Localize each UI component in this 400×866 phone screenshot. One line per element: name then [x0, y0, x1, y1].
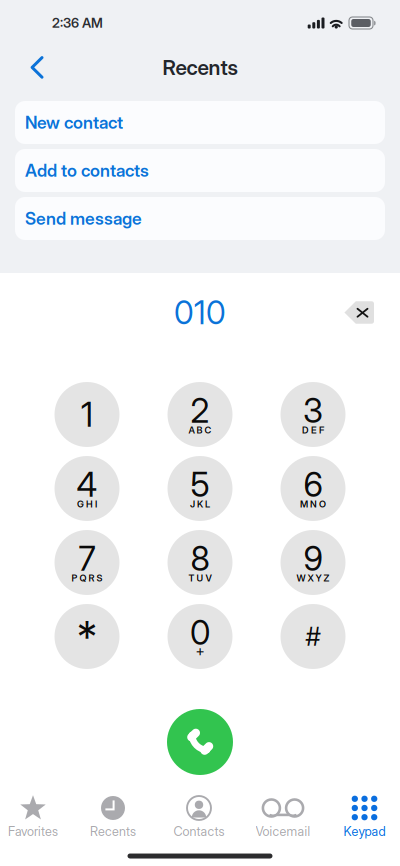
button[interactable]: Favorites — [0, 775, 80, 866]
button[interactable]: 2 — [167, 382, 232, 447]
button[interactable]: 1 — [54, 382, 119, 447]
button[interactable]: 9 — [280, 530, 345, 595]
staticText: Recents — [90, 824, 136, 839]
button[interactable]: Recents — [80, 775, 160, 866]
button[interactable]: Keypad — [320, 775, 400, 866]
staticText: 3 — [303, 390, 323, 431]
button[interactable]: Call — [167, 709, 233, 775]
staticText: New contact — [25, 112, 123, 133]
button[interactable]: Send message — [15, 197, 385, 240]
staticText: + — [195, 642, 204, 660]
staticText: 010 — [174, 293, 226, 332]
button[interactable]: 8 — [167, 530, 232, 595]
button[interactable]: * — [54, 604, 119, 669]
button[interactable]: 6 — [280, 456, 345, 521]
staticText: # — [305, 621, 320, 652]
button[interactable]: Add to contacts — [15, 149, 385, 192]
staticText: 9 — [303, 538, 322, 579]
staticText: Send message — [25, 208, 142, 229]
button[interactable]: 7 — [54, 530, 119, 595]
staticText: Recents — [162, 55, 237, 80]
staticText: A B C — [188, 424, 211, 436]
button[interactable]: 0 — [167, 604, 232, 669]
staticText: J K L — [190, 498, 210, 510]
staticText: 4 — [76, 464, 97, 505]
staticText: D E F — [302, 424, 324, 436]
staticText: Favorites — [8, 824, 58, 839]
button[interactable]: Contacts — [160, 775, 240, 866]
staticText: Contacts — [173, 824, 224, 839]
button[interactable]: 4 — [54, 456, 119, 521]
button[interactable]: 5 — [167, 456, 232, 521]
button[interactable]: 3 — [280, 382, 345, 447]
staticText: G H I — [77, 498, 97, 510]
button[interactable]: # — [280, 604, 345, 669]
button[interactable]: Voicemail — [240, 775, 320, 866]
staticText: Voicemail — [255, 824, 310, 839]
staticText: M N O — [300, 498, 326, 510]
staticText: 7 — [78, 538, 95, 579]
staticText: 2:36 AM — [52, 15, 103, 31]
staticText: 5 — [190, 464, 209, 505]
staticText: 6 — [303, 464, 322, 505]
staticText: P Q R S — [71, 572, 102, 584]
staticText: 8 — [190, 538, 209, 579]
staticText: Add to contacts — [25, 160, 149, 181]
staticText: 2 — [190, 390, 209, 431]
staticText: 0 — [190, 612, 210, 653]
staticText: Keypad — [343, 824, 385, 839]
button[interactable]: New contact — [15, 101, 385, 144]
staticText: * — [77, 611, 97, 662]
button[interactable]: Back — [0, 46, 57, 89]
button[interactable]: Delete — [336, 293, 382, 332]
staticText: 1 — [81, 394, 93, 435]
staticText: T U V — [188, 572, 211, 584]
staticText: W X Y Z — [296, 572, 329, 584]
